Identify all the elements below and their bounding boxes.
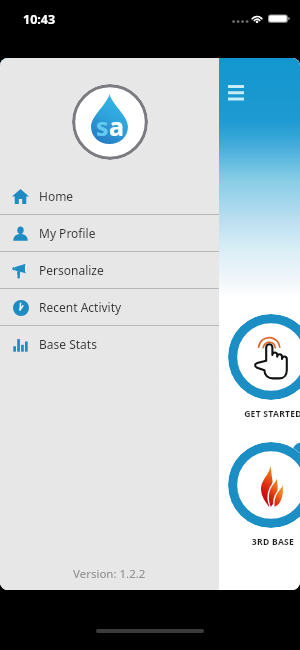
staticText: Version: 1.2.2 (73, 566, 146, 582)
staticText: 10:43 (23, 11, 56, 28)
staticText: 3RD BASE (208, 536, 300, 548)
button[interactable]: Home (0, 178, 219, 214)
button[interactable]: 3RD BASE (228, 442, 300, 528)
button[interactable]: Base Stats (0, 326, 219, 362)
staticText: Personalize (39, 262, 104, 278)
staticText: My Profile (39, 225, 96, 241)
button[interactable]: Recent Activity (0, 289, 219, 325)
staticText: GET STARTED (208, 408, 300, 420)
staticText: s (96, 109, 109, 143)
button[interactable]: Profile picture (72, 84, 148, 160)
button[interactable]: Personalize (0, 252, 219, 288)
button[interactable]: GET STARTED (228, 314, 300, 400)
staticText: Recent Activity (39, 299, 122, 315)
button[interactable]: My Profile (0, 215, 219, 251)
staticText: Base Stats (39, 336, 97, 352)
button[interactable]: Open navigation menu (224, 80, 248, 102)
button[interactable]: More (292, 442, 300, 464)
staticText: a (109, 109, 124, 143)
staticText: Home (39, 188, 74, 204)
